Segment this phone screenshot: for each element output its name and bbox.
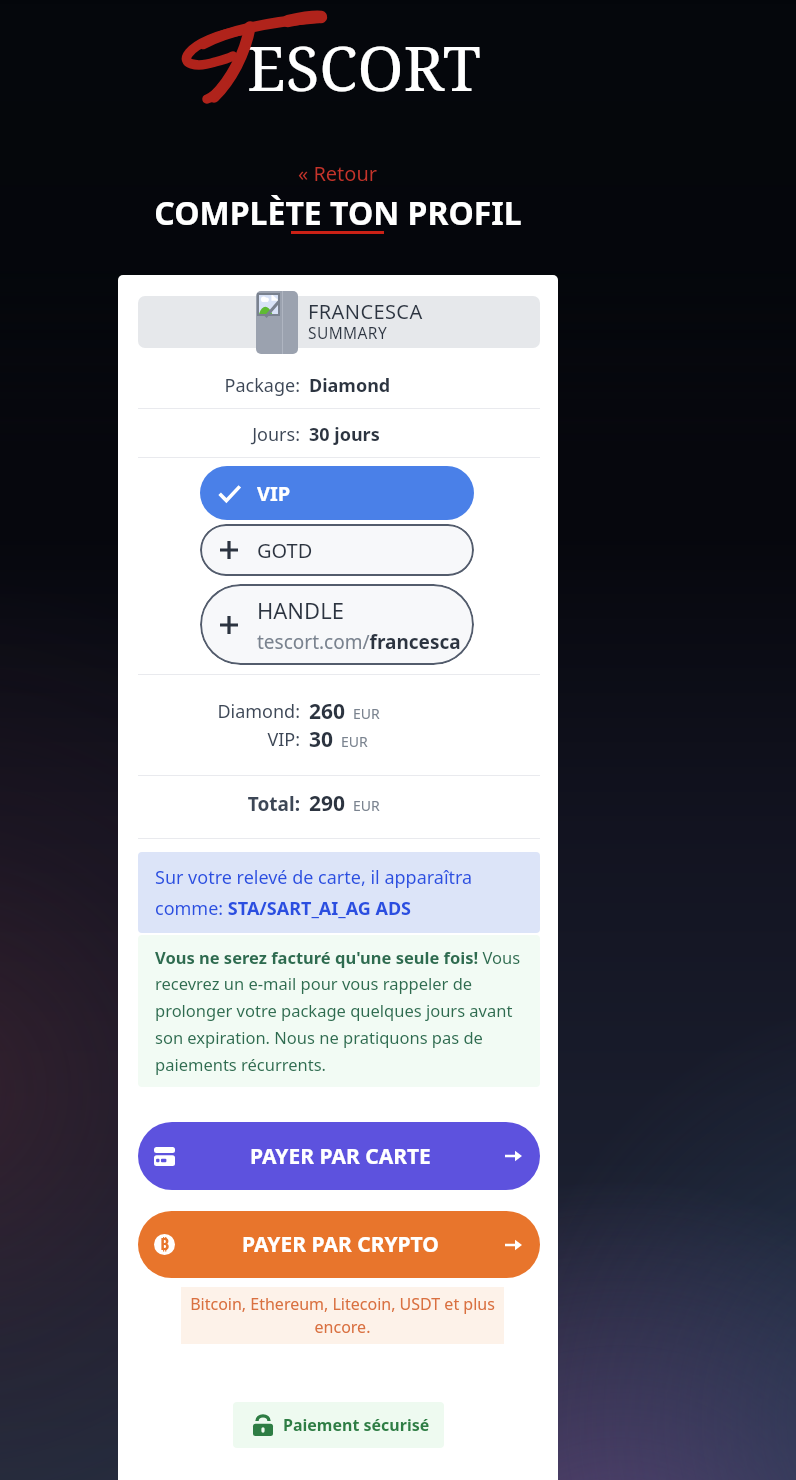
- button[interactable]: Paiement sécurisé: [233, 1402, 444, 1448]
- staticText: VIP: [257, 480, 291, 507]
- staticText: 30 jours: [309, 422, 380, 447]
- button[interactable]: PAYER PAR CARTE: [138, 1122, 540, 1190]
- button[interactable]: GOTD: [200, 524, 474, 576]
- button[interactable]: « Retour: [298, 160, 378, 187]
- staticText: 260: [309, 697, 346, 726]
- staticText: VIP:: [118, 727, 300, 752]
- staticText: EUR: [341, 732, 368, 751]
- staticText: Vous ne serez facturé qu'une seule fois!…: [155, 946, 523, 1076]
- staticText: COMPLÈTE TON PROFIL: [0, 191, 676, 235]
- staticText: 30: [309, 725, 334, 754]
- staticText: 290: [309, 789, 346, 818]
- staticText: Paiement sécurisé: [283, 1414, 430, 1436]
- staticText: Total:: [118, 791, 300, 817]
- staticText: SUMMARY: [308, 322, 388, 343]
- staticText: PAYER PAR CRYPTO: [242, 1230, 439, 1259]
- staticText: FRANCESCA: [308, 298, 423, 325]
- staticText: Diamond:: [118, 699, 300, 724]
- staticText: GOTD: [257, 537, 313, 564]
- button[interactable]: FRANCESCA: [138, 296, 540, 348]
- staticText: Package:: [118, 373, 300, 398]
- staticText: Bitcoin, Ethereum, Litecoin, USDT et plu…: [188, 1293, 497, 1338]
- staticText: EUR: [353, 796, 380, 815]
- staticText: EUR: [353, 704, 380, 723]
- button[interactable]: ₿: [138, 1211, 540, 1278]
- button[interactable]: HANDLE: [200, 584, 474, 665]
- staticText: Jours:: [118, 422, 300, 447]
- staticText: ₿: [160, 1234, 170, 1254]
- staticText: HANDLE: [257, 595, 344, 625]
- staticText: Sur votre relevé de carte, il apparaîtra…: [155, 865, 523, 920]
- staticText: PAYER PAR CARTE: [250, 1142, 431, 1171]
- button[interactable]: VIP: [200, 466, 474, 520]
- staticText: Diamond: [309, 373, 391, 398]
- staticText: ESCORT: [247, 25, 481, 109]
- staticText: tescort.com/francesca: [257, 629, 461, 655]
